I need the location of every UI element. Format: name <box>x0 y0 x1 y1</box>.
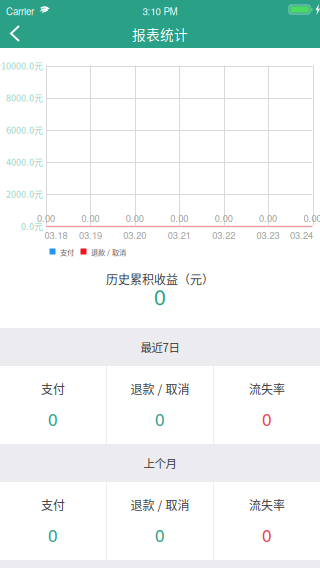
staticText: 03.21 <box>168 228 191 242</box>
staticText: 0 <box>48 522 58 547</box>
staticText: 6000.0元 <box>6 123 43 136</box>
staticText: 10000.0元 <box>1 59 43 72</box>
staticText: 历史累积收益（元） <box>106 270 214 288</box>
staticText: 0 <box>48 406 58 431</box>
staticText: 流失率 <box>249 380 285 397</box>
staticText: 03.24 <box>290 228 313 242</box>
button[interactable]: 退款 / 取消 <box>107 366 213 444</box>
staticText: 支付 <box>60 247 74 257</box>
staticText: 03.19 <box>79 228 102 242</box>
staticText: 0 <box>155 406 165 431</box>
staticText: 退款 / 取消 <box>130 380 189 397</box>
staticText: 退款 / 取消 <box>130 496 189 513</box>
button[interactable]: 流失率 <box>214 366 320 444</box>
staticText: 0.00 <box>259 211 277 225</box>
staticText: 支付 <box>41 496 65 513</box>
staticText: 0.0元 <box>21 219 43 232</box>
staticText: 03.23 <box>257 228 280 242</box>
staticText: 0.00 <box>170 211 188 225</box>
staticText: 03.22 <box>212 228 235 242</box>
staticText: 上个月 <box>143 455 176 471</box>
staticText: 4000.0元 <box>6 155 43 168</box>
button[interactable]: 支付 <box>0 366 106 444</box>
staticText: 0.00 <box>303 211 320 225</box>
staticText: 报表统计 <box>132 24 188 44</box>
staticText: 最近7日 <box>140 339 179 355</box>
staticText: 0 <box>154 281 166 311</box>
button[interactable]: 支付 <box>0 482 106 560</box>
staticText: 0.00 <box>126 211 144 225</box>
staticText: 3:10 PM <box>142 4 177 18</box>
staticText: 03.18 <box>44 228 67 242</box>
staticText: 2000.0元 <box>6 187 43 200</box>
staticText: 0 <box>155 522 165 547</box>
staticText: 0.00 <box>81 211 99 225</box>
staticText: 0 <box>262 406 272 431</box>
staticText: 8000.0元 <box>6 91 43 104</box>
staticText: 0.00 <box>37 211 55 225</box>
staticText: 退款 / 取消 <box>91 247 126 257</box>
button[interactable]: Back <box>0 20 40 47</box>
staticText: 流失率 <box>249 496 285 513</box>
staticText: Carrier <box>6 4 34 18</box>
staticText: 0.00 <box>215 211 233 225</box>
staticText: 支付 <box>41 380 65 397</box>
staticText: 0 <box>262 522 272 547</box>
button[interactable]: 退款 / 取消 <box>107 482 213 560</box>
staticText: 03.20 <box>123 228 146 242</box>
button[interactable]: 流失率 <box>214 482 320 560</box>
